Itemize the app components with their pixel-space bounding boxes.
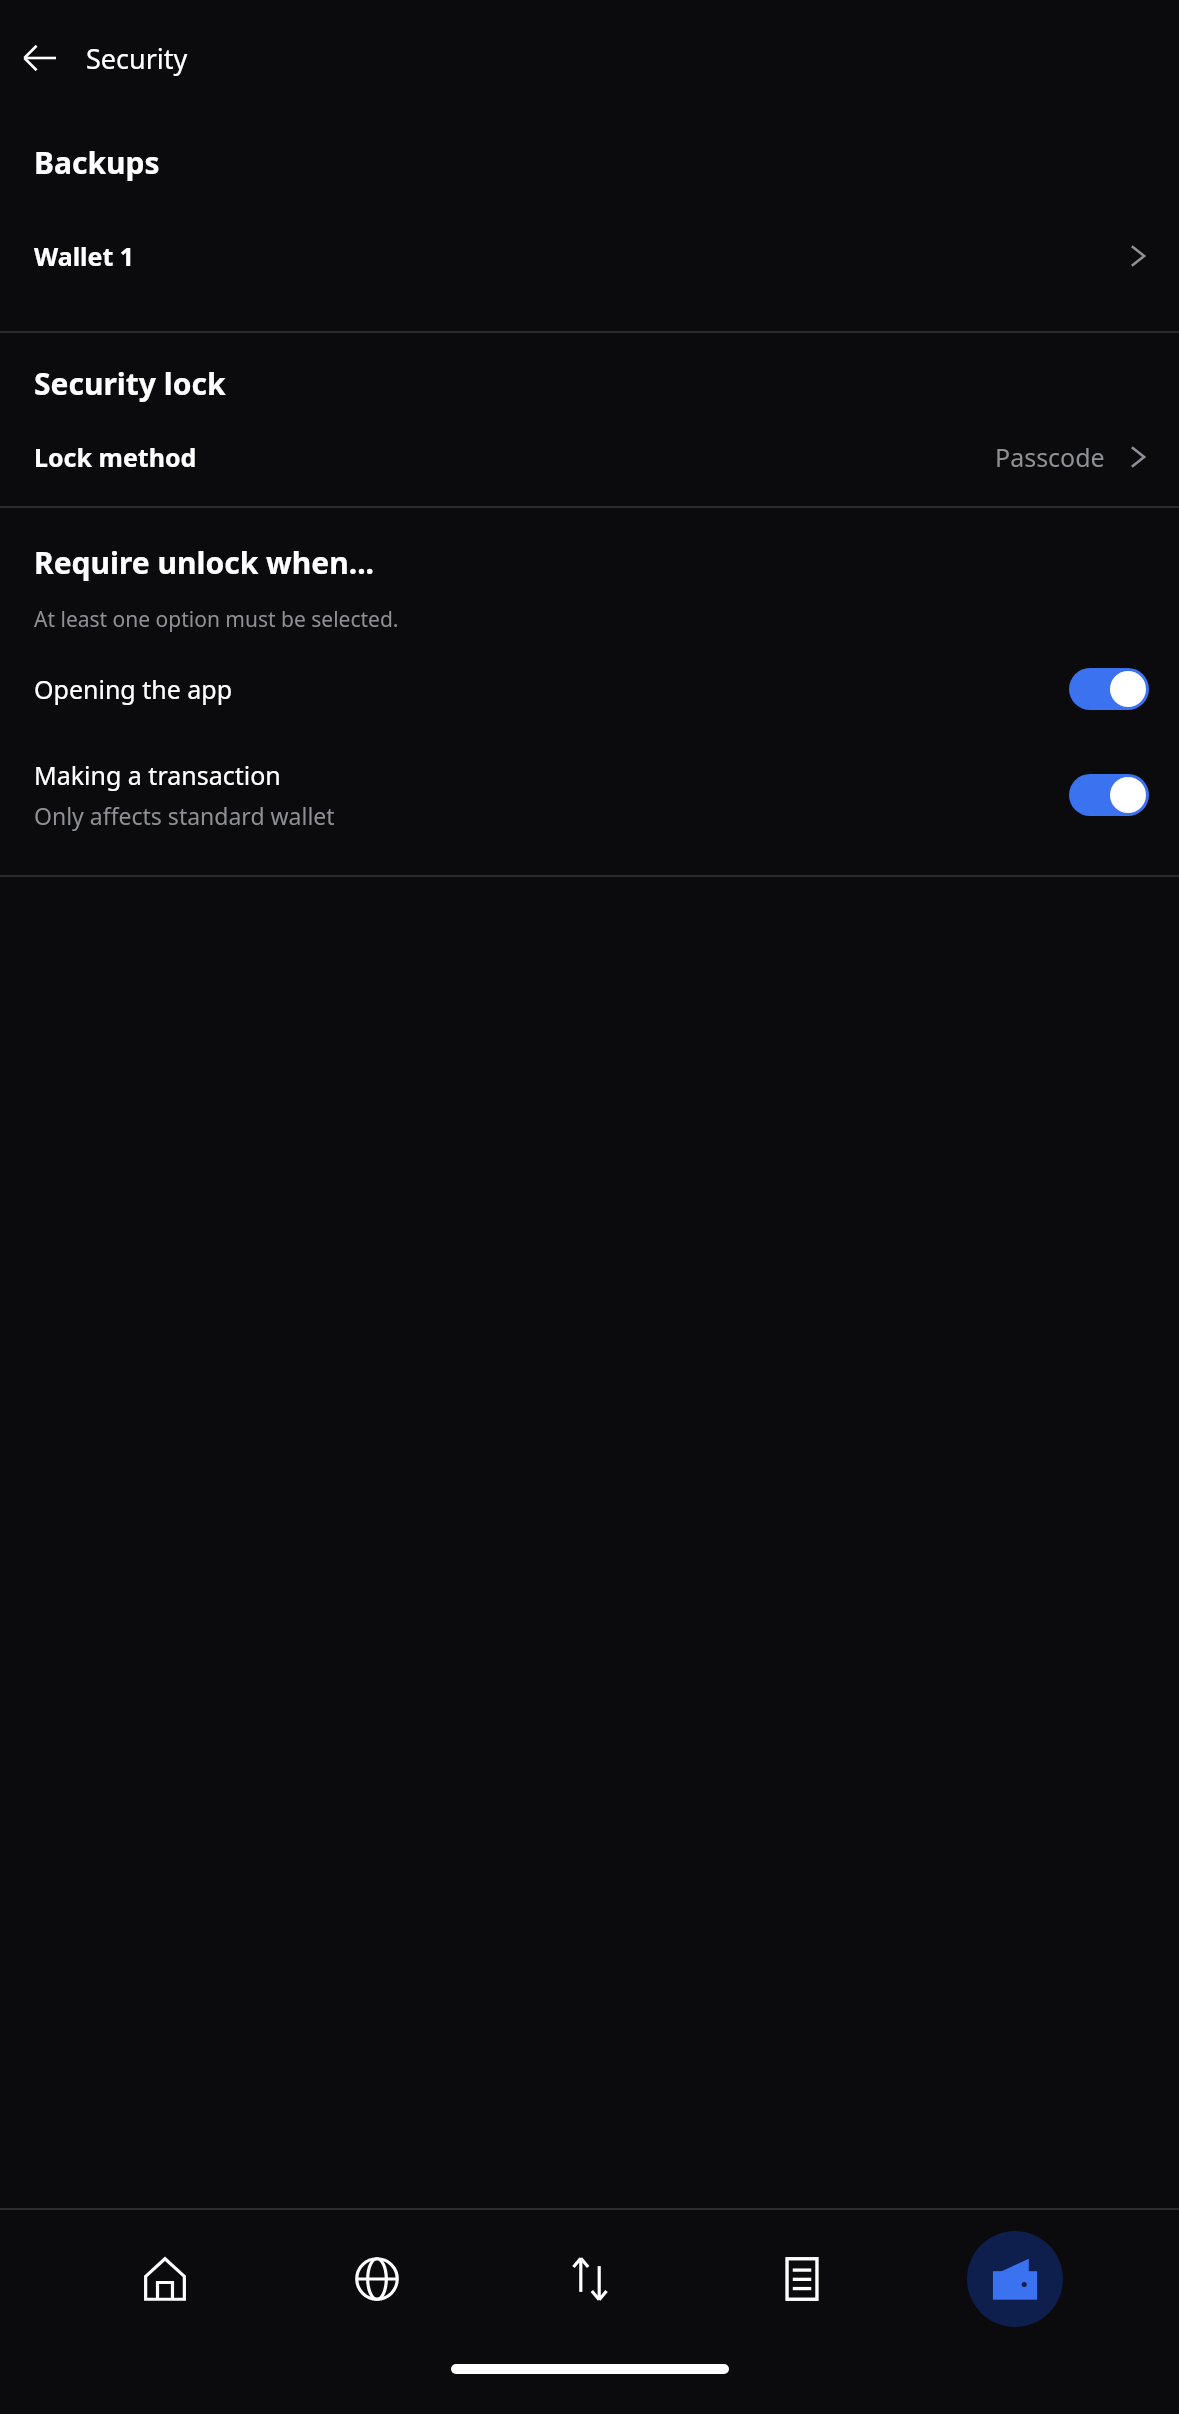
staticText: Backups	[34, 142, 160, 183]
button[interactable]: Activity	[754, 2231, 850, 2327]
staticText: Opening the app	[34, 672, 233, 706]
staticText: Security lock	[34, 363, 226, 404]
staticText: Making a transaction	[34, 758, 281, 792]
button[interactable]: Wallet	[967, 2231, 1063, 2327]
staticText: Only affects standard wallet	[34, 800, 335, 831]
button[interactable]: Back	[12, 30, 68, 86]
staticText: Lock method	[34, 440, 197, 474]
button[interactable]: Wallet 1	[0, 239, 1179, 273]
button[interactable]: Toggle on	[1069, 668, 1149, 710]
button[interactable]: Opening the app	[0, 668, 1179, 710]
staticText: Security	[86, 40, 188, 77]
button[interactable]: Home	[117, 2231, 213, 2327]
staticText: Require unlock when...	[34, 542, 374, 583]
button[interactable]: Lock method	[0, 440, 1179, 474]
staticText: Wallet 1	[34, 239, 135, 273]
button[interactable]: Toggle on	[1069, 774, 1149, 816]
staticText: Passcode	[995, 440, 1105, 474]
button[interactable]: Browser	[329, 2231, 425, 2327]
button[interactable]: Transfer	[542, 2231, 638, 2327]
button[interactable]: Making a transaction	[0, 758, 1179, 831]
staticText: At least one option must be selected.	[34, 605, 399, 634]
